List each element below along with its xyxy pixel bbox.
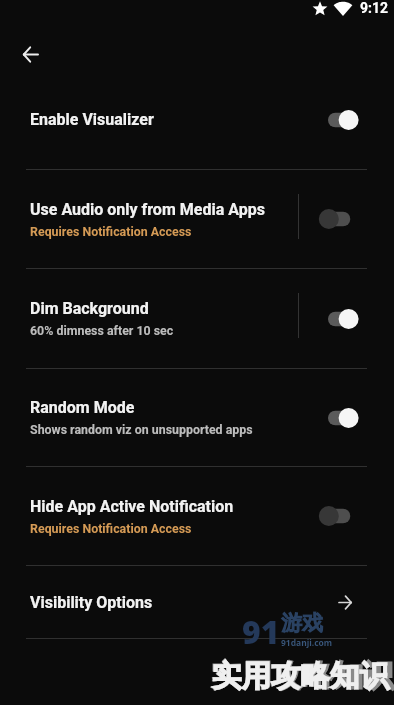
button[interactable]: Enable Visualizer [0, 70, 298, 169]
button[interactable]: Dim Background [0, 269, 298, 368]
staticText: Requires Notification Access [30, 521, 192, 536]
staticText: 9:12 [360, 0, 389, 16]
button[interactable]: Back [6, 34, 54, 74]
staticText: 实用攻略知识 [211, 657, 394, 695]
staticText: 游戏 [281, 610, 323, 636]
staticText: Visibility Options [30, 593, 339, 612]
button[interactable]: Toggle on [299, 369, 394, 466]
staticText: Random Mode [30, 398, 135, 417]
button[interactable]: Toggle off [299, 467, 394, 565]
staticText: Use Audio only from Media Apps [30, 200, 265, 219]
button[interactable]: Random Mode [0, 369, 298, 466]
staticText: Requires Notification Access [30, 224, 192, 239]
staticText: 91 [242, 610, 280, 654]
button[interactable]: Hide App Active Notification [0, 467, 298, 565]
staticText: 91danji.com [281, 637, 333, 649]
staticText: 60% dimness after 10 sec [30, 323, 174, 338]
staticText: Hide App Active Notification [30, 497, 234, 516]
button[interactable]: Toggle off [299, 170, 394, 268]
button[interactable]: Use Audio only from Media Apps [0, 170, 298, 268]
staticText: Dim Background [30, 299, 149, 318]
button[interactable]: Toggle on [299, 269, 394, 368]
staticText: Enable Visualizer [30, 110, 154, 129]
button[interactable]: Toggle on [299, 70, 394, 169]
button[interactable]: Visibility Options [0, 566, 394, 638]
staticText: 实用攻略知识 [212, 658, 389, 695]
staticText: Shows random viz on unsupported apps [30, 422, 253, 437]
